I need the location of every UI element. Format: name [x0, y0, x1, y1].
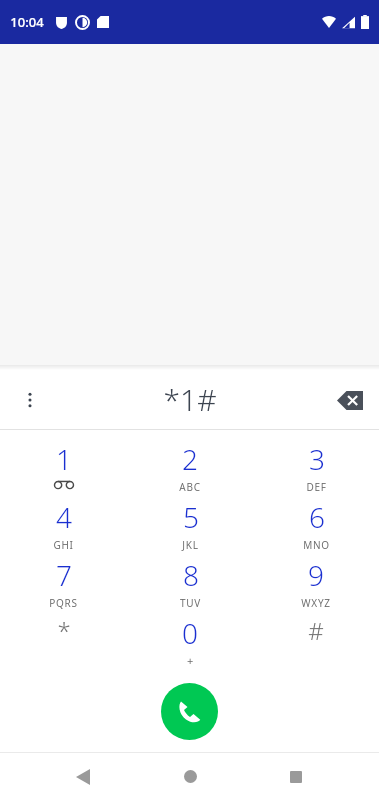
button[interactable]: More options [8, 378, 52, 422]
staticText: # [308, 614, 324, 647]
staticText: 1 [56, 440, 72, 478]
button[interactable]: 0 [127, 612, 253, 670]
button[interactable]: 9 [253, 554, 379, 612]
staticText: + [187, 653, 194, 668]
staticText: 6 [309, 498, 325, 536]
staticText: 4 [56, 498, 72, 536]
staticText: JKL [182, 538, 199, 552]
button[interactable]: 5 [127, 496, 253, 554]
button[interactable]: 1 [0, 438, 127, 496]
staticText: 7 [56, 556, 72, 594]
button[interactable]: 7 [0, 554, 127, 612]
staticText: 0 [182, 614, 198, 652]
staticText: ABC [179, 480, 201, 494]
staticText: 10:04 [10, 13, 44, 31]
staticText: 3 [309, 440, 325, 478]
staticText: 8 [183, 556, 199, 594]
staticText: TUV [180, 596, 201, 610]
staticText: 2 [182, 440, 198, 478]
staticText: DEF [306, 480, 327, 494]
button[interactable]: Back [59, 753, 107, 800]
button[interactable]: 3 [253, 438, 379, 496]
button[interactable]: * [0, 612, 127, 670]
button[interactable]: # [253, 612, 379, 670]
staticText: 5 [183, 498, 199, 536]
button[interactable]: 2 [127, 438, 253, 496]
staticText: PQRS [49, 596, 78, 610]
staticText: * [57, 614, 71, 647]
button[interactable]: Home [166, 753, 214, 800]
button[interactable]: 4 [0, 496, 127, 554]
staticText: WXYZ [301, 596, 331, 610]
button[interactable]: Recents [272, 753, 320, 800]
button[interactable]: 6 [253, 496, 379, 554]
button[interactable]: Backspace [327, 377, 373, 423]
staticText: MNO [303, 538, 330, 552]
staticText: *1# [163, 379, 217, 420]
button[interactable]: 8 [127, 554, 253, 612]
button[interactable]: Call [161, 683, 218, 740]
staticText: 9 [308, 556, 324, 594]
staticText: GHI [53, 538, 74, 552]
